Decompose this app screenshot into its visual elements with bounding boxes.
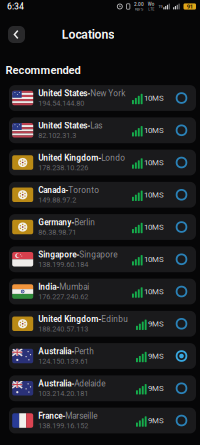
button[interactable]: Back [8, 26, 25, 43]
staticText: 124.150.139.61 [38, 357, 88, 365]
staticText: Wo [148, 2, 155, 7]
staticText: 82.102.31.3 [38, 131, 76, 140]
staticText: 19 [158, 4, 162, 9]
staticText: Recommended [5, 63, 80, 77]
button[interactable]: United States- [9, 117, 196, 143]
staticText: Toronto [68, 185, 99, 195]
staticText: France- [38, 411, 65, 421]
staticText: 138.199.16.152 [38, 421, 88, 430]
button[interactable]: France- [9, 408, 196, 433]
staticText: Londo [101, 153, 125, 163]
staticText: 194.54.144.80 [38, 99, 84, 107]
staticText: United Kingdom- [38, 314, 101, 324]
staticText: Perth [74, 347, 94, 356]
staticText: Canada- [38, 185, 68, 195]
button[interactable]: Australia- [9, 343, 196, 369]
staticText: 86.38.98.71 [38, 228, 76, 236]
staticText: 10MS [144, 190, 164, 199]
staticText: 178.238.10.226 [38, 163, 88, 172]
staticText: Singapore [79, 250, 117, 260]
staticText: 103.214.20.181 [38, 389, 88, 398]
staticText: India- [38, 282, 59, 292]
button[interactable]: Australia- [9, 375, 196, 401]
staticText: United States- [38, 121, 90, 131]
staticText: Edinbu [101, 314, 128, 324]
staticText: Australia- [38, 347, 74, 356]
button[interactable]: India- [9, 279, 196, 304]
button[interactable]: United Kingdom- [9, 311, 196, 337]
staticText: 9MS [148, 351, 164, 361]
staticText: 176.227.240.62 [38, 292, 88, 301]
button[interactable]: Canada- [9, 182, 196, 208]
staticText: Mumbai [59, 282, 89, 292]
staticText: Germany- [38, 218, 74, 227]
staticText: New York [90, 89, 125, 98]
staticText: Las [90, 121, 102, 131]
staticText: LTE [148, 7, 154, 11]
staticText: Australia- [38, 379, 74, 389]
staticText: 149.88.97.2 [38, 196, 76, 204]
staticText: 6:34 [7, 1, 24, 12]
staticText: 10MS [144, 126, 164, 135]
button[interactable]: United States- [9, 85, 196, 111]
staticText: 10MS [144, 93, 164, 103]
staticText: United States- [38, 89, 90, 98]
staticText: 188.240.57.113 [38, 325, 88, 333]
staticText: 9MS [148, 319, 164, 328]
staticText: 2.00 [134, 1, 144, 7]
staticText: United Kingdom- [38, 153, 101, 163]
staticText: 10MS [144, 287, 164, 296]
staticText: 10MS [144, 255, 164, 264]
staticText: 138.199.60.184 [38, 260, 88, 269]
staticText: 10MS [144, 222, 164, 232]
staticText: KB/S [135, 7, 143, 11]
staticText: Berlin [74, 218, 95, 227]
button[interactable]: United Kingdom- [9, 150, 196, 175]
button[interactable]: Singapore- [9, 246, 196, 272]
staticText: Marseille [65, 411, 97, 421]
staticText: 9MS [148, 416, 164, 425]
staticText: Adelaide [74, 379, 105, 389]
staticText: 91 [187, 3, 193, 10]
staticText: Singapore- [38, 250, 79, 260]
staticText: 10MS [144, 158, 164, 167]
button[interactable]: Germany- [9, 214, 196, 240]
staticText: 9MS [148, 384, 164, 393]
staticText: Locations [62, 27, 114, 42]
